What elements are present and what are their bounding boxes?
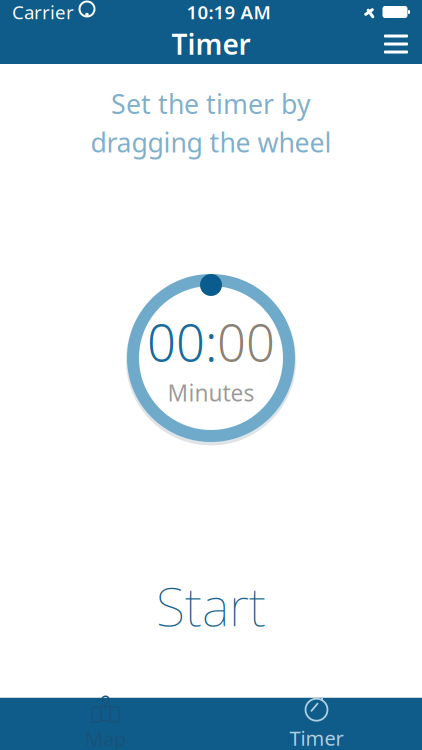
staticText: Set the timer by: [111, 86, 311, 121]
button[interactable]: Start: [126, 562, 296, 649]
staticText: dragging the wheel: [90, 124, 331, 160]
staticText: Map: [85, 725, 126, 750]
staticText: Minutes: [167, 378, 254, 408]
button[interactable]: Menu: [370, 24, 422, 63]
button[interactable]: Map: [0, 691, 211, 750]
staticText: 00:: [147, 308, 217, 376]
staticText: Carrier: [12, 0, 74, 24]
button[interactable]: Timer: [211, 692, 422, 750]
staticText: Start: [156, 570, 266, 641]
staticText: Timer: [171, 25, 250, 63]
staticText: 10:19 AM: [186, 0, 270, 24]
staticText: 00: [217, 308, 275, 376]
staticText: Timer: [289, 725, 343, 750]
